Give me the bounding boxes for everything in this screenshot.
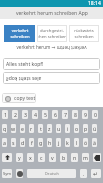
button[interactable]: n (71, 153, 78, 162)
button[interactable]: b (60, 153, 67, 162)
staticText: 2 (14, 111, 17, 118)
staticText: 8 (74, 111, 77, 118)
staticText: m (83, 154, 88, 161)
button[interactable]: Alles steht kopf! (3, 58, 100, 70)
staticText: 0 (94, 111, 97, 118)
button[interactable]: 9 (82, 110, 88, 119)
staticText: ¡ɟdoʞ ʇɥǝʇs sǝןɐ (6, 75, 42, 82)
staticText: q (3, 125, 7, 132)
button[interactable]: y (16, 153, 23, 162)
staticText: l (76, 139, 78, 146)
button[interactable]: w (11, 124, 16, 133)
button[interactable]: d (20, 138, 25, 147)
staticText: durchgestri- chen schreiben (37, 28, 67, 39)
staticText: i (67, 125, 69, 132)
button[interactable]: 8 (72, 110, 78, 119)
staticText: o (75, 125, 79, 132)
staticText: 18:14 (88, 0, 101, 7)
button[interactable]: ä (92, 138, 97, 147)
button[interactable]: r (29, 124, 34, 133)
staticText: Alles steht kopf! (6, 61, 44, 68)
button[interactable]: g (38, 138, 43, 147)
staticText: 4 (34, 111, 37, 118)
staticText: y (18, 154, 21, 161)
button[interactable]: e (20, 124, 25, 133)
button[interactable]: copy text (2, 93, 36, 103)
staticText: Deutsch (45, 171, 59, 176)
button[interactable]: ö (83, 138, 88, 147)
staticText: s (12, 139, 15, 146)
button[interactable]: Sym (2, 169, 12, 178)
staticText: v (51, 154, 54, 161)
staticText: g (39, 139, 43, 146)
staticText: r (30, 125, 33, 132)
button[interactable]: z (47, 124, 52, 133)
staticText: verkehrt schreiben (10, 28, 30, 39)
staticText: ä (93, 139, 96, 146)
staticText: f (31, 139, 33, 146)
staticText: ü (93, 125, 97, 132)
staticText: ↵ (93, 170, 99, 177)
button[interactable]: o (74, 124, 79, 133)
button[interactable]: 7 (62, 110, 68, 119)
staticText: d (21, 139, 25, 146)
button[interactable]: verkehrt schreiben (4, 25, 35, 42)
button[interactable]: s (11, 138, 16, 147)
staticText: copy text (14, 95, 36, 102)
staticText: rückwärts schreiben (74, 28, 94, 39)
button[interactable]: i (65, 124, 70, 133)
button[interactable]: Deutsch (27, 169, 76, 178)
staticText: p (84, 125, 88, 132)
staticText: e (21, 125, 24, 132)
button[interactable]: 4 (32, 110, 38, 119)
button[interactable] (16, 169, 23, 178)
button[interactable] (2, 153, 12, 162)
staticText: k (66, 139, 69, 146)
staticText: j (58, 139, 60, 146)
staticText: w (11, 125, 16, 132)
staticText: h (48, 139, 52, 146)
button[interactable]: ↵ (91, 169, 101, 178)
staticText: t (40, 125, 42, 132)
button[interactable]: q (2, 124, 7, 133)
button[interactable]: v (49, 153, 56, 162)
button[interactable]: u (56, 124, 61, 133)
staticText: . (83, 170, 85, 177)
button[interactable]: p (83, 124, 88, 133)
staticText: a (3, 139, 6, 146)
button[interactable]: 1 (2, 110, 8, 119)
button[interactable]: 3 (22, 110, 28, 119)
staticText: 3 (24, 111, 27, 118)
button[interactable] (93, 153, 101, 162)
staticText: verkehrt herum schreiben App (16, 10, 88, 17)
button[interactable]: t (38, 124, 43, 133)
staticText: b (62, 154, 66, 161)
button[interactable]: 6 (52, 110, 58, 119)
staticText: Sym (3, 171, 11, 176)
button[interactable]: m (82, 153, 89, 162)
staticText: x (29, 154, 32, 161)
button[interactable]: ü (92, 124, 97, 133)
button[interactable]: l (74, 138, 79, 147)
staticText: 1 (4, 111, 7, 118)
button[interactable]: f (29, 138, 34, 147)
button[interactable]: 0 (92, 110, 98, 119)
button[interactable]: 5 (42, 110, 48, 119)
button[interactable]: ¡ɟdoʞ ʇɥǝʇs sǝןɐ (3, 72, 100, 84)
staticText: n (73, 154, 77, 161)
button[interactable]: . (80, 169, 87, 178)
staticText: 6 (54, 111, 57, 118)
button[interactable]: c (38, 153, 45, 162)
button[interactable]: 2 (12, 110, 18, 119)
button[interactable]: h (47, 138, 52, 147)
staticText: 9 (84, 111, 87, 118)
staticText: c (40, 154, 43, 161)
button[interactable]: x (27, 153, 34, 162)
button[interactable]: k (65, 138, 70, 147)
button[interactable]: durchgestri- chen schreiben (37, 25, 67, 42)
staticText: ö (84, 139, 88, 146)
button[interactable]: rückwärts schreiben (69, 25, 99, 42)
button[interactable]: j (56, 138, 61, 147)
staticText: 7 (64, 111, 67, 118)
button[interactable]: a (2, 138, 7, 147)
